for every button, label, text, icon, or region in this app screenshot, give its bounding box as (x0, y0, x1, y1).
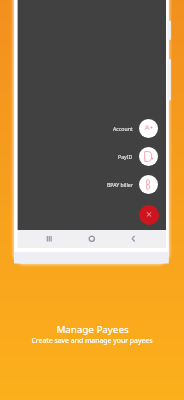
staticText: Account (113, 125, 133, 132)
staticText: Create save and manage your payees (31, 336, 153, 345)
staticText: PayID (118, 153, 133, 160)
staticText: BPAY biller (107, 181, 133, 188)
button[interactable]: Account (95, 119, 158, 138)
button[interactable]: Close actions menu (139, 205, 159, 225)
button[interactable]: PayID (95, 147, 158, 166)
staticText: Manage Payees (56, 323, 129, 336)
button[interactable]: BPAY biller (95, 175, 158, 194)
